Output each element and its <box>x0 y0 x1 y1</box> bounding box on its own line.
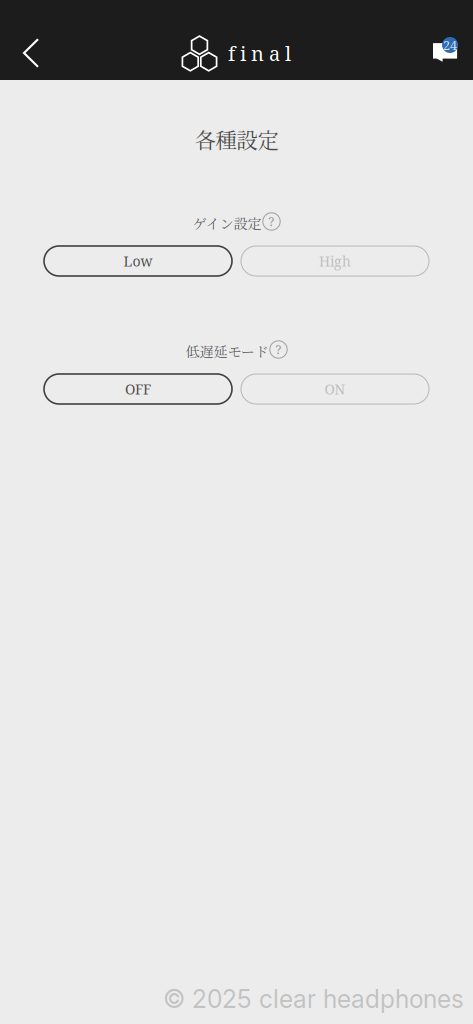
staticText: 各種設定 <box>194 124 278 154</box>
button[interactable]: ON <box>241 374 429 404</box>
staticText: ON <box>324 379 345 399</box>
button[interactable]: High <box>241 246 429 276</box>
button[interactable]: Back <box>9 0 53 68</box>
staticText: ? <box>268 213 274 230</box>
staticText: ゲイン設定 <box>193 213 262 233</box>
staticText: 24 <box>443 36 457 54</box>
staticText: High <box>319 251 351 271</box>
staticText: f i n a l <box>228 40 291 67</box>
button[interactable]: OFF <box>44 374 232 404</box>
button[interactable]: Low <box>44 246 232 276</box>
staticText: © 2025 clear headphones <box>163 984 464 1014</box>
button[interactable]: Messages <box>426 0 466 62</box>
staticText: Low <box>123 251 152 271</box>
staticText: 低遅延モード <box>186 341 269 361</box>
staticText: ? <box>275 341 281 358</box>
staticText: OFF <box>125 379 151 399</box>
